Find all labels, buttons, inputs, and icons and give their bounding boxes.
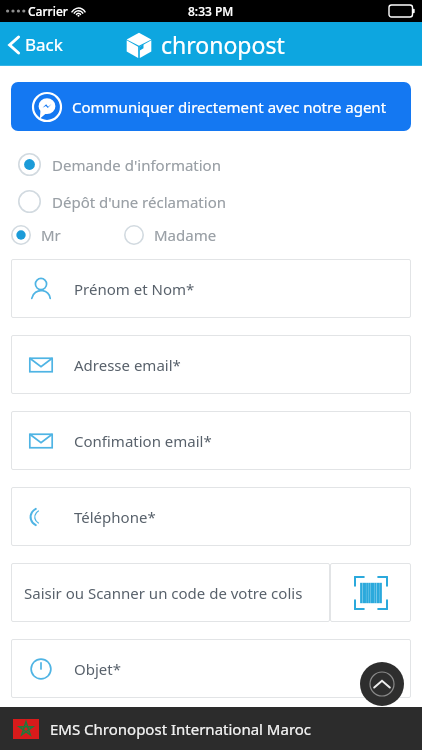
staticText: Objet*	[74, 659, 121, 679]
button[interactable]: Mr	[11, 225, 61, 245]
staticText: Adresse email*	[74, 355, 181, 375]
staticText: Demande d'information	[52, 155, 221, 175]
staticText: Saisir ou Scanner un code de votre colis	[24, 583, 303, 603]
staticText: Madame	[154, 225, 217, 245]
staticText: Mr	[41, 225, 61, 245]
button[interactable]: Communiquer directement avec notre agent	[11, 82, 411, 131]
staticText: Communiquer directement avec notre agent	[72, 97, 387, 117]
button[interactable]: Téléphone*	[11, 487, 411, 546]
button[interactable]: Dépôt d'une réclamation	[0, 190, 422, 213]
staticText: Back	[25, 33, 63, 56]
button[interactable]: EMS Chronopost International Maroc	[0, 707, 422, 750]
staticText: Carrier	[28, 3, 68, 19]
button[interactable]: Madame	[124, 225, 217, 245]
button[interactable]: Scroll to top	[360, 662, 404, 706]
staticText: Dépôt d'une réclamation	[52, 192, 226, 212]
staticText: 8:33 PM	[188, 3, 234, 19]
staticText: Téléphone*	[74, 507, 156, 527]
button[interactable]: Demande d'information	[0, 153, 422, 176]
button[interactable]: Back	[0, 27, 73, 62]
button[interactable]: Adresse email*	[11, 335, 411, 394]
staticText: Prénom et Nom*	[74, 279, 195, 299]
button[interactable]: Prénom et Nom*	[11, 259, 411, 318]
button[interactable]: Saisir ou Scanner un code de votre colis	[11, 563, 330, 622]
button[interactable]: Objet*	[11, 639, 411, 698]
staticText: EMS Chronopost International Maroc	[50, 719, 312, 739]
button[interactable]: Confimation email*	[11, 411, 411, 470]
staticText: Confimation email*	[74, 431, 212, 451]
staticText: chronopost	[161, 29, 285, 60]
button[interactable]: Scan barcode	[330, 563, 411, 622]
